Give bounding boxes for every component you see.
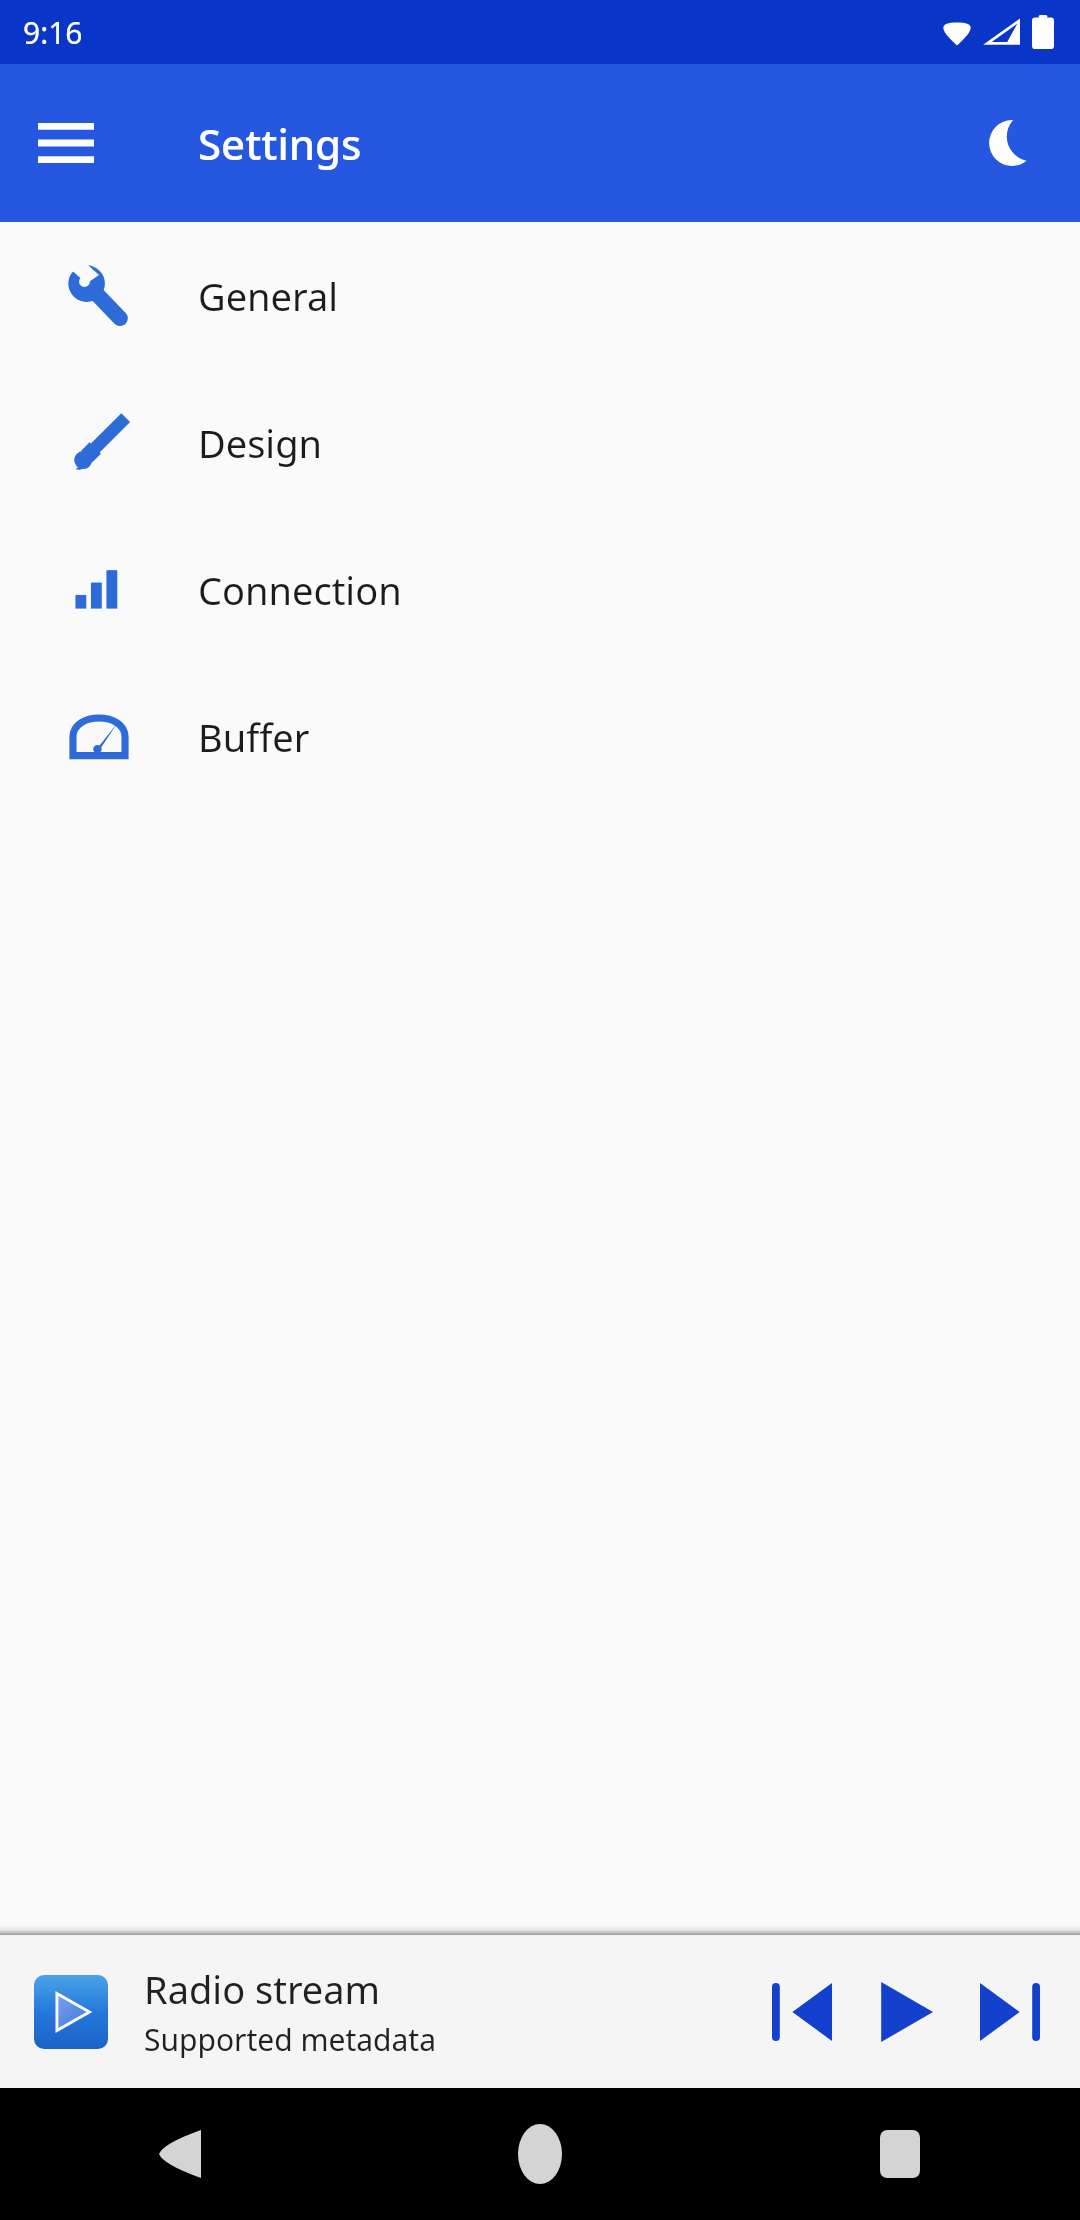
- button[interactable]: General: [0, 222, 1080, 369]
- staticText: Buffer: [198, 711, 310, 763]
- staticText: General: [198, 270, 339, 322]
- button[interactable]: Back: [0, 2088, 360, 2220]
- button[interactable]: Design: [0, 369, 1080, 516]
- staticText: Settings: [198, 115, 362, 172]
- button[interactable]: Connection: [0, 516, 1080, 663]
- button[interactable]: Buffer: [0, 663, 1080, 810]
- staticText: 9:16: [23, 12, 83, 53]
- staticText: Connection: [198, 564, 402, 616]
- button[interactable]: Play: [854, 1935, 958, 2088]
- button[interactable]: Toggle night mode: [966, 97, 1058, 189]
- button[interactable]: Previous: [750, 1935, 854, 2088]
- button[interactable]: Next: [958, 1935, 1062, 2088]
- button[interactable]: Home: [360, 2088, 720, 2220]
- staticText: Design: [198, 417, 323, 469]
- button[interactable]: Recent apps: [720, 2088, 1080, 2220]
- button[interactable]: Open player: [34, 1975, 108, 2049]
- staticText: Radio stream: [144, 1963, 381, 2015]
- staticText: Supported metadata: [144, 2019, 437, 2060]
- button[interactable]: Open navigation menu: [20, 97, 112, 189]
